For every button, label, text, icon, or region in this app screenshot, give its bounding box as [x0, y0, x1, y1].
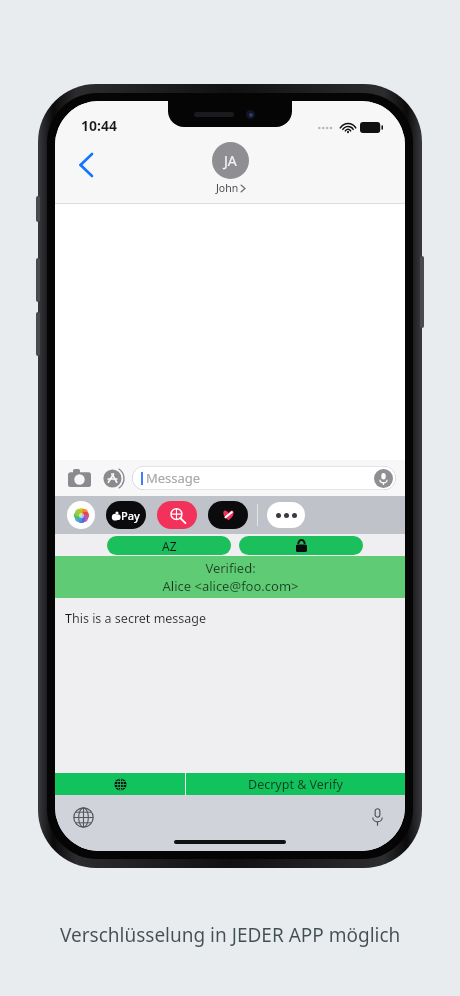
button[interactable]: App Store [98, 463, 128, 493]
button[interactable]: Encrypt [239, 536, 363, 555]
button[interactable]: Back [65, 145, 105, 185]
button[interactable]: Heart app [208, 501, 248, 529]
button[interactable]: Search app [157, 501, 197, 529]
button[interactable]: Language [69, 803, 97, 831]
button[interactable]: JA [212, 142, 249, 195]
button[interactable]: AZ [107, 536, 231, 555]
button[interactable]: Globe [55, 773, 185, 795]
button[interactable]: Dictate [374, 469, 393, 488]
button[interactable]: Decrypt & Verify [186, 773, 405, 795]
button[interactable]: Photos [67, 501, 95, 529]
staticText: Message [146, 469, 201, 487]
button[interactable]: Dictation [363, 803, 391, 831]
staticText: Verified: [205, 559, 256, 577]
staticText: John [216, 181, 239, 195]
staticText: AZ [162, 538, 177, 554]
staticText: This is a secret message [65, 610, 207, 627]
staticText: JA [224, 151, 237, 170]
button[interactable]: Message [132, 466, 396, 490]
button[interactable]: Apple Pay [106, 501, 146, 529]
staticText: 10:44 [81, 116, 117, 135]
staticText: Alice <alice@foo.com> [162, 577, 299, 595]
button[interactable]: Camera [64, 463, 94, 493]
staticText: Verschlüsselung in JEDER APP möglich [60, 922, 401, 948]
staticText: Decrypt & Verify [248, 776, 343, 793]
button[interactable]: More apps [267, 502, 305, 528]
staticText: Pay [121, 508, 140, 523]
